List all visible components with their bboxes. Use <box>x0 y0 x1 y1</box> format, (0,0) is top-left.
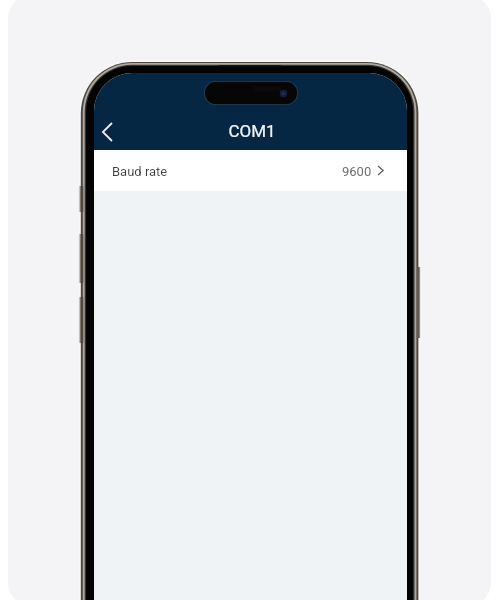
button[interactable]: Baud rate <box>94 150 407 191</box>
staticText: 9600 <box>342 164 372 179</box>
button[interactable]: Back <box>94 110 127 154</box>
staticText: Baud rate <box>112 164 168 179</box>
staticText: COM1 <box>228 121 276 141</box>
